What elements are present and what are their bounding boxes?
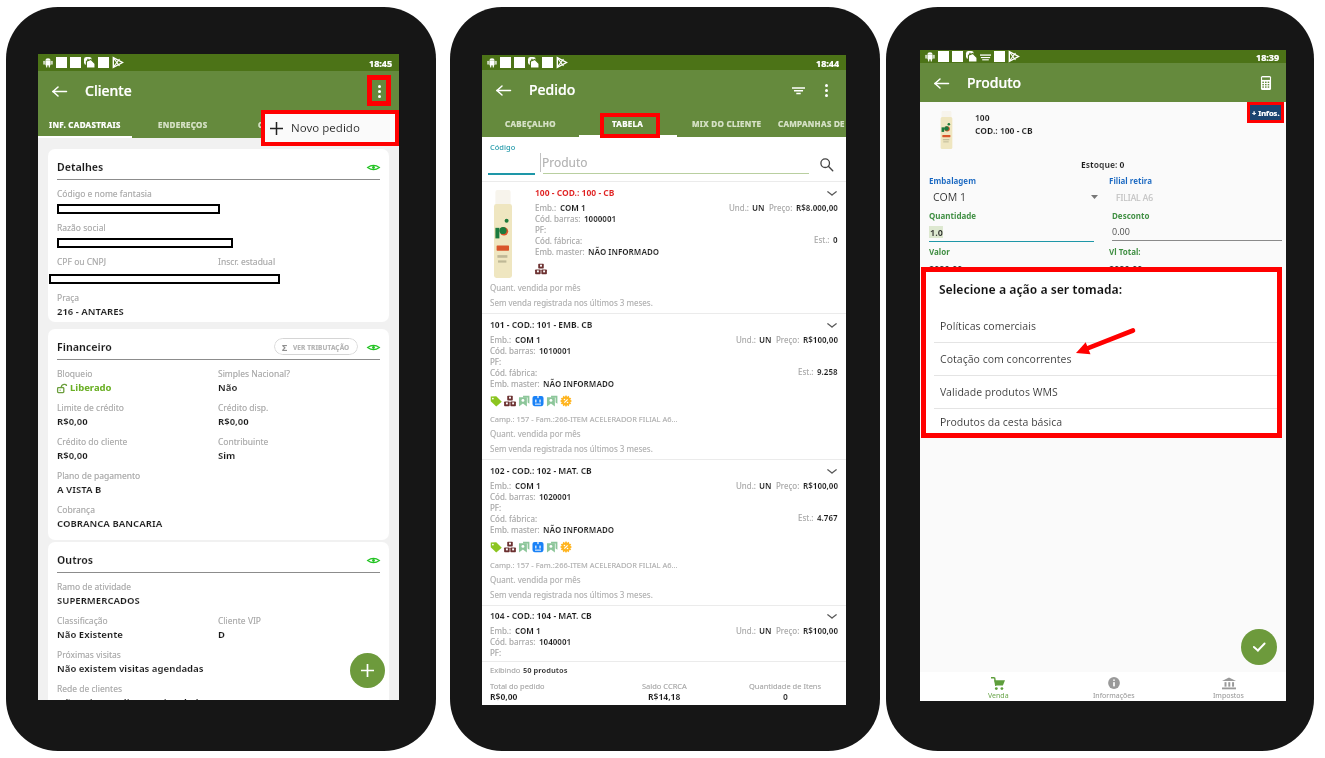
- staticText: Sem venda registrada nos últimos 3 meses…: [490, 589, 653, 600]
- staticText: Cód. fábrica:: [490, 513, 538, 524]
- button[interactable]: Validade produtos WMS: [926, 376, 1277, 408]
- staticText: Ramo de atividade: [57, 581, 132, 593]
- staticText: Praça: [57, 292, 80, 304]
- button[interactable]: Impostos: [1171, 672, 1286, 701]
- staticText: Cobrança: [57, 504, 95, 516]
- button[interactable]: Filter: [785, 77, 811, 103]
- staticText: Sem venda registrada nos últimos 3 meses…: [490, 443, 653, 454]
- staticText: 18:39: [1256, 51, 1280, 63]
- staticText: Classificação: [57, 615, 108, 627]
- staticText: UN: [759, 334, 772, 345]
- button[interactable]: INF. CADASTRAIS: [38, 110, 132, 138]
- staticText: Outros: [57, 553, 94, 567]
- button[interactable]: Visibility: [366, 553, 380, 567]
- staticText: COM 1: [560, 202, 586, 213]
- staticText: Desconto: [1112, 210, 1150, 221]
- staticText: COM 1: [515, 334, 541, 345]
- button[interactable]: Políticas comerciais: [926, 310, 1277, 342]
- staticText: CPF ou CNPJ: [57, 256, 218, 268]
- staticText: Valor: [929, 246, 950, 257]
- staticText: Cód. fábrica:: [535, 235, 583, 246]
- button[interactable]: Confirmar: [1241, 629, 1277, 665]
- staticText: Informações: [1093, 691, 1135, 701]
- staticText: PF:: [490, 356, 502, 367]
- staticText: Filial retira: [1109, 175, 1153, 186]
- staticText: Venda: [988, 691, 1009, 701]
- staticText: NÃO INFORMADO: [543, 378, 615, 389]
- staticText: R$100,00: [803, 334, 838, 345]
- button[interactable]: CABEÇALHO: [482, 109, 579, 137]
- button[interactable]: Σ: [274, 338, 358, 355]
- staticText: 0: [783, 691, 788, 703]
- staticText: Σ: [282, 341, 288, 353]
- button[interactable]: + Infos.: [1249, 104, 1282, 121]
- button[interactable]: ENDEREÇOS: [132, 110, 233, 138]
- button[interactable]: Visibility: [366, 340, 380, 354]
- staticText: 4.767: [817, 512, 838, 523]
- staticText: Emb. master:: [490, 378, 540, 389]
- staticText: Financeiro: [57, 340, 112, 354]
- staticText: Contribuinte: [218, 436, 269, 448]
- staticText: Emb. master:: [535, 246, 585, 257]
- staticText: Novo pedido: [291, 120, 360, 136]
- staticText: 1040001: [539, 636, 572, 647]
- staticText: Não existem clientes vinculados: [57, 696, 210, 700]
- staticText: CAMPANHAS DE: [778, 118, 845, 129]
- button[interactable]: More options: [364, 76, 394, 106]
- staticText: Crédito do cliente: [57, 436, 128, 448]
- button[interactable]: Novo pedido: [261, 110, 399, 146]
- staticText: Emb.:: [490, 334, 512, 345]
- staticText: 104 - COD.: 104 - MAT. CB: [490, 610, 592, 622]
- button[interactable]: Back: [44, 76, 74, 106]
- button[interactable]: Venda: [940, 672, 1056, 701]
- staticText: Emb.:: [490, 480, 512, 491]
- staticText: 1.0: [930, 226, 943, 238]
- staticText: TABELA: [612, 118, 644, 129]
- staticText: Bloqueio: [57, 368, 93, 380]
- button[interactable]: Back: [926, 68, 956, 98]
- staticText: Razão social: [57, 222, 106, 234]
- staticText: Produto: [967, 73, 1022, 92]
- button[interactable]: CONTATOS: [233, 110, 327, 138]
- staticText: Liberado: [70, 381, 112, 394]
- button[interactable]: Back: [488, 75, 518, 105]
- button[interactable]: Produtos da cesta básica: [926, 409, 1277, 434]
- staticText: + Infos.: [1252, 108, 1280, 118]
- button[interactable]: CAMPANHAS DE: [776, 109, 846, 137]
- staticText: R$0,00: [490, 691, 518, 703]
- button[interactable]: Novo: [350, 653, 385, 688]
- staticText: Preço:: [776, 625, 800, 636]
- staticText: Quantidade: [929, 210, 977, 221]
- button[interactable]: Informações: [1056, 672, 1171, 701]
- button[interactable]: 100 - COD.: 100 - CB: [482, 182, 846, 313]
- staticText: R$0,00: [57, 415, 88, 428]
- staticText: Emb.:: [490, 625, 512, 636]
- staticText: Preço:: [776, 480, 800, 491]
- staticText: Embalagem: [929, 175, 976, 186]
- button[interactable]: Visibility: [366, 160, 380, 174]
- staticText: Preço:: [769, 202, 793, 213]
- button[interactable]: Search: [816, 154, 836, 174]
- staticText: Quant. vendida por mês: [490, 428, 581, 439]
- staticText: 1000001: [584, 213, 617, 224]
- staticText: R$14,18: [648, 691, 681, 703]
- staticText: Est.:: [814, 234, 830, 245]
- staticText: NÃO INFORMADO: [543, 524, 615, 535]
- button[interactable]: TABELA: [579, 109, 677, 137]
- staticText: Impostos: [1213, 691, 1244, 701]
- staticText: Produtos da cesta básica: [940, 415, 1063, 429]
- staticText: A VISTA B: [57, 483, 102, 496]
- staticText: Quant. vendida por mês: [490, 574, 581, 585]
- staticText: Est.:: [798, 512, 814, 523]
- button[interactable]: MIX DO CLIENTE: [677, 109, 776, 137]
- button[interactable]: 101 - COD.: 101 - EMB. CB: [482, 314, 846, 459]
- button[interactable]: Calculator: [1252, 69, 1280, 97]
- button[interactable]: 102 - COD.: 102 - MAT. CB: [482, 460, 846, 605]
- staticText: Não: [218, 381, 238, 394]
- button[interactable]: More options: [811, 75, 841, 105]
- staticText: Não Existente: [57, 628, 124, 641]
- staticText: ENDEREÇOS: [158, 119, 208, 130]
- staticText: Crédito disp.: [218, 402, 269, 414]
- button[interactable]: Cotação com concorrentes: [926, 343, 1277, 375]
- staticText: Validade produtos WMS: [940, 385, 1058, 399]
